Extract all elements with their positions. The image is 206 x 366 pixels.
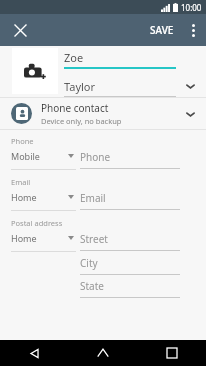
button[interactable]: Recent apps bbox=[137, 340, 206, 366]
staticText: Email bbox=[11, 177, 31, 187]
button[interactable]: Home bbox=[11, 232, 76, 252]
button[interactable]: Home bbox=[11, 191, 76, 211]
button[interactable]: Email bbox=[80, 191, 180, 210]
staticText: City bbox=[80, 256, 98, 270]
staticText: Zoe bbox=[64, 50, 84, 65]
staticText: 10:00 bbox=[181, 2, 202, 13]
button[interactable]: Phone contact bbox=[0, 98, 206, 129]
button[interactable]: Mobile bbox=[11, 150, 76, 170]
button[interactable]: Home bbox=[68, 340, 137, 366]
button[interactable]: Zoe bbox=[64, 50, 176, 69]
button[interactable]: City bbox=[80, 256, 180, 275]
button[interactable]: Close bbox=[8, 18, 32, 42]
staticText: SAVE bbox=[150, 23, 174, 37]
staticText: Street bbox=[80, 232, 108, 246]
button[interactable]: Phone bbox=[80, 150, 180, 169]
staticText: Phone bbox=[11, 136, 34, 146]
staticText: Home bbox=[11, 232, 37, 244]
button[interactable]: Taylor bbox=[64, 79, 176, 97]
staticText: Device only, no backup bbox=[41, 116, 122, 126]
button[interactable]: Back bbox=[0, 340, 68, 366]
button[interactable]: More options bbox=[180, 17, 206, 43]
button[interactable]: SAVE bbox=[144, 17, 180, 43]
button[interactable]: Street bbox=[80, 232, 180, 251]
staticText: Home bbox=[11, 191, 37, 203]
staticText: Taylor bbox=[64, 79, 96, 94]
staticText: Phone bbox=[80, 150, 111, 164]
staticText: Postal address bbox=[11, 218, 63, 228]
button[interactable]: Add photo bbox=[12, 48, 58, 94]
button[interactable]: Expand name fields bbox=[180, 77, 200, 96]
button[interactable]: State bbox=[80, 279, 180, 298]
staticText: Mobile bbox=[11, 150, 40, 162]
staticText: State bbox=[80, 279, 104, 293]
staticText: Email bbox=[80, 191, 106, 205]
staticText: Phone contact bbox=[41, 101, 109, 115]
